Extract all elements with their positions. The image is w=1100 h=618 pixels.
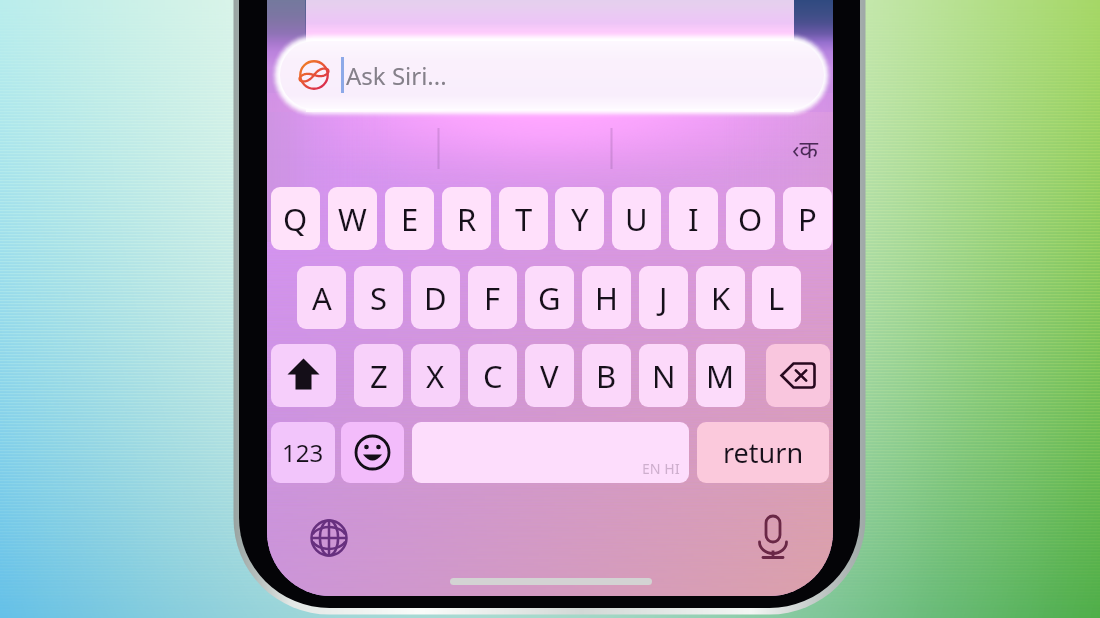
button[interactable]: Shift [271,344,336,407]
button[interactable]: F [468,266,517,329]
button[interactable]: Emoji [341,422,404,483]
button[interactable]: V [525,344,574,407]
button[interactable]: T [499,187,548,250]
staticText: X [426,355,445,397]
button[interactable]: C [468,344,517,407]
staticText: T [515,198,533,240]
button[interactable]: Q [271,187,320,250]
button[interactable]: R [442,187,491,250]
button[interactable]: Change keyboard [310,519,348,557]
button[interactable]: E [385,187,434,250]
staticText: L [768,277,785,319]
button[interactable]: Dictate [756,514,790,560]
button[interactable]: A [297,266,346,329]
button[interactable]: B [582,344,631,407]
staticText: I [688,198,699,240]
staticText: V [540,355,559,397]
button[interactable]: Switch language [781,128,829,168]
button[interactable]: J [639,266,688,329]
button[interactable]: O [726,187,775,250]
button[interactable]: D [411,266,460,329]
button[interactable]: Ask Siri... [280,41,824,109]
staticText: W [338,198,367,240]
button[interactable]: N [639,344,688,407]
staticText: G [538,277,561,319]
button[interactable]: H [582,266,631,329]
staticText: Y [571,198,589,240]
staticText: H [595,277,618,319]
button[interactable]: Y [555,187,604,250]
staticText: Ask Siri... [346,59,447,92]
button[interactable]: P [783,187,832,250]
staticText: U [625,198,648,240]
staticText: ‹क [792,132,818,165]
button[interactable]: I [669,187,718,250]
button[interactable]: 123 [271,422,335,483]
staticText: B [596,355,617,397]
button[interactable]: L [752,266,801,329]
button[interactable]: Backspace [766,344,830,407]
button[interactable]: return [697,422,829,483]
button[interactable]: Z [354,344,403,407]
staticText: C [483,355,503,397]
staticText: N [652,355,676,397]
staticText: F [484,277,501,319]
staticText: J [659,277,668,319]
button[interactable]: G [525,266,574,329]
button[interactable]: S [354,266,403,329]
staticText: R [457,198,477,240]
staticText: P [798,198,817,240]
staticText: Q [283,198,308,240]
staticText: S [370,277,388,319]
button[interactable]: U [612,187,661,250]
staticText: A [312,277,332,319]
button[interactable]: Space [412,422,689,483]
staticText: M [706,355,735,397]
staticText: Z [370,355,388,397]
staticText: return [723,434,804,471]
staticText: O [738,198,763,240]
staticText: EN HI [642,459,680,478]
button[interactable]: K [696,266,745,329]
button[interactable]: M [696,344,745,407]
button[interactable]: X [411,344,460,407]
staticText: E [401,198,419,240]
button[interactable]: W [328,187,377,250]
staticText: D [424,277,447,319]
staticText: 123 [282,436,324,469]
staticText: K [711,277,731,319]
